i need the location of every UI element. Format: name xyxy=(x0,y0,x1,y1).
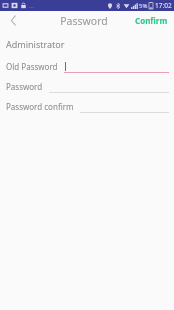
staticText: Password xyxy=(6,81,43,92)
staticText: Old Password xyxy=(6,61,58,72)
staticText: 5% xyxy=(139,2,148,10)
button[interactable]: Password confirm xyxy=(0,96,174,116)
staticText: 17:02 xyxy=(155,1,172,10)
staticText: Administrator xyxy=(6,38,65,50)
button[interactable]: Confirm xyxy=(129,11,174,30)
button[interactable]: Password xyxy=(0,76,174,96)
staticText: Password xyxy=(60,14,108,28)
staticText: Password confirm xyxy=(6,101,74,112)
button[interactable]: Back xyxy=(0,11,26,30)
staticText: Confirm xyxy=(135,15,168,26)
button[interactable]: Old Password xyxy=(0,56,174,76)
